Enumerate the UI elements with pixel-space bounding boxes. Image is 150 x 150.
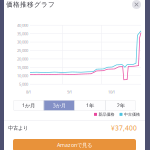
staticText: 中古より [8,125,28,131]
staticText: 1年 [86,102,94,109]
staticText: 10,000 [17,73,28,78]
staticText: ¥37,400 [111,124,137,132]
staticText: 35,000 [17,31,28,36]
staticText: 中古価格 [124,112,140,117]
button[interactable]: Amazonで見る [13,139,136,150]
staticText: 30,000 [17,39,28,45]
button[interactable]: 1か月 [13,100,44,110]
button[interactable]: 3か月 [44,100,75,110]
staticText: 25,000 [17,48,28,53]
staticText: 20,000 [17,56,28,62]
staticText: 価格推移グラフ [6,0,55,9]
staticText: 8/1 [26,89,31,94]
staticText: Amazonで見る [57,141,92,148]
staticText: 40,000 [17,22,28,28]
button[interactable]: 2年 [105,100,136,110]
staticText: 1か月 [22,102,35,109]
staticText: 新品価格 [98,112,114,117]
staticText: 2年 [117,102,125,109]
staticText: 3か月 [53,102,66,109]
button[interactable]: 閉じる [132,0,141,9]
staticText: 9/1 [67,89,72,94]
button[interactable]: 1年 [74,100,105,110]
staticText: 15,000 [17,65,28,70]
staticText: 5,000 [19,81,28,87]
staticText: 10/1 [108,89,115,94]
